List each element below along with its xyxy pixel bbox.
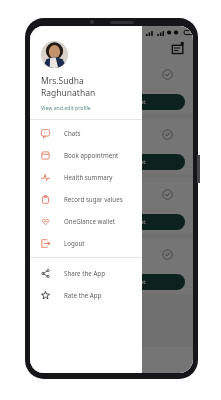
button[interactable]: Logout xyxy=(30,232,142,254)
button[interactable]: Rate the App xyxy=(30,284,142,306)
staticText: Logout xyxy=(64,239,85,247)
staticText: OneGlance wallet xyxy=(64,217,115,225)
button[interactable]: Book appointment xyxy=(52,94,185,110)
button[interactable]: Book appointment xyxy=(52,274,185,290)
button[interactable]: OneGlance wallet xyxy=(30,210,142,232)
button[interactable]: Book appointment xyxy=(52,214,185,230)
button[interactable]: View and edit profile xyxy=(30,103,101,112)
button[interactable]: Book appointment xyxy=(30,144,142,166)
button[interactable]: Book appointment xyxy=(52,154,185,170)
button[interactable]: Share the App xyxy=(30,262,142,284)
button[interactable]: Messages xyxy=(171,41,186,56)
staticText: Health summary xyxy=(64,173,113,181)
staticText: Record sugar values xyxy=(64,195,123,203)
staticText: Mrs.Sudha Raghunathan xyxy=(41,75,142,99)
button[interactable]: Record sugar values xyxy=(30,188,142,210)
button[interactable]: Chats xyxy=(30,347,193,373)
staticText: Book appointment xyxy=(92,98,146,106)
staticText: Book appointment xyxy=(92,278,146,286)
button[interactable]: Health summary xyxy=(30,166,142,188)
staticText: Book appointment xyxy=(92,158,146,166)
staticText: View and edit profile xyxy=(41,104,91,111)
staticText: Share the App xyxy=(64,269,105,277)
staticText: Rate the App xyxy=(64,291,102,299)
button[interactable]: Profile photo xyxy=(41,41,68,68)
staticText: Book appointment xyxy=(92,218,146,226)
button[interactable]: Chats xyxy=(30,122,142,144)
staticText: Book appointment xyxy=(64,151,119,159)
staticText: Chats xyxy=(64,129,81,137)
